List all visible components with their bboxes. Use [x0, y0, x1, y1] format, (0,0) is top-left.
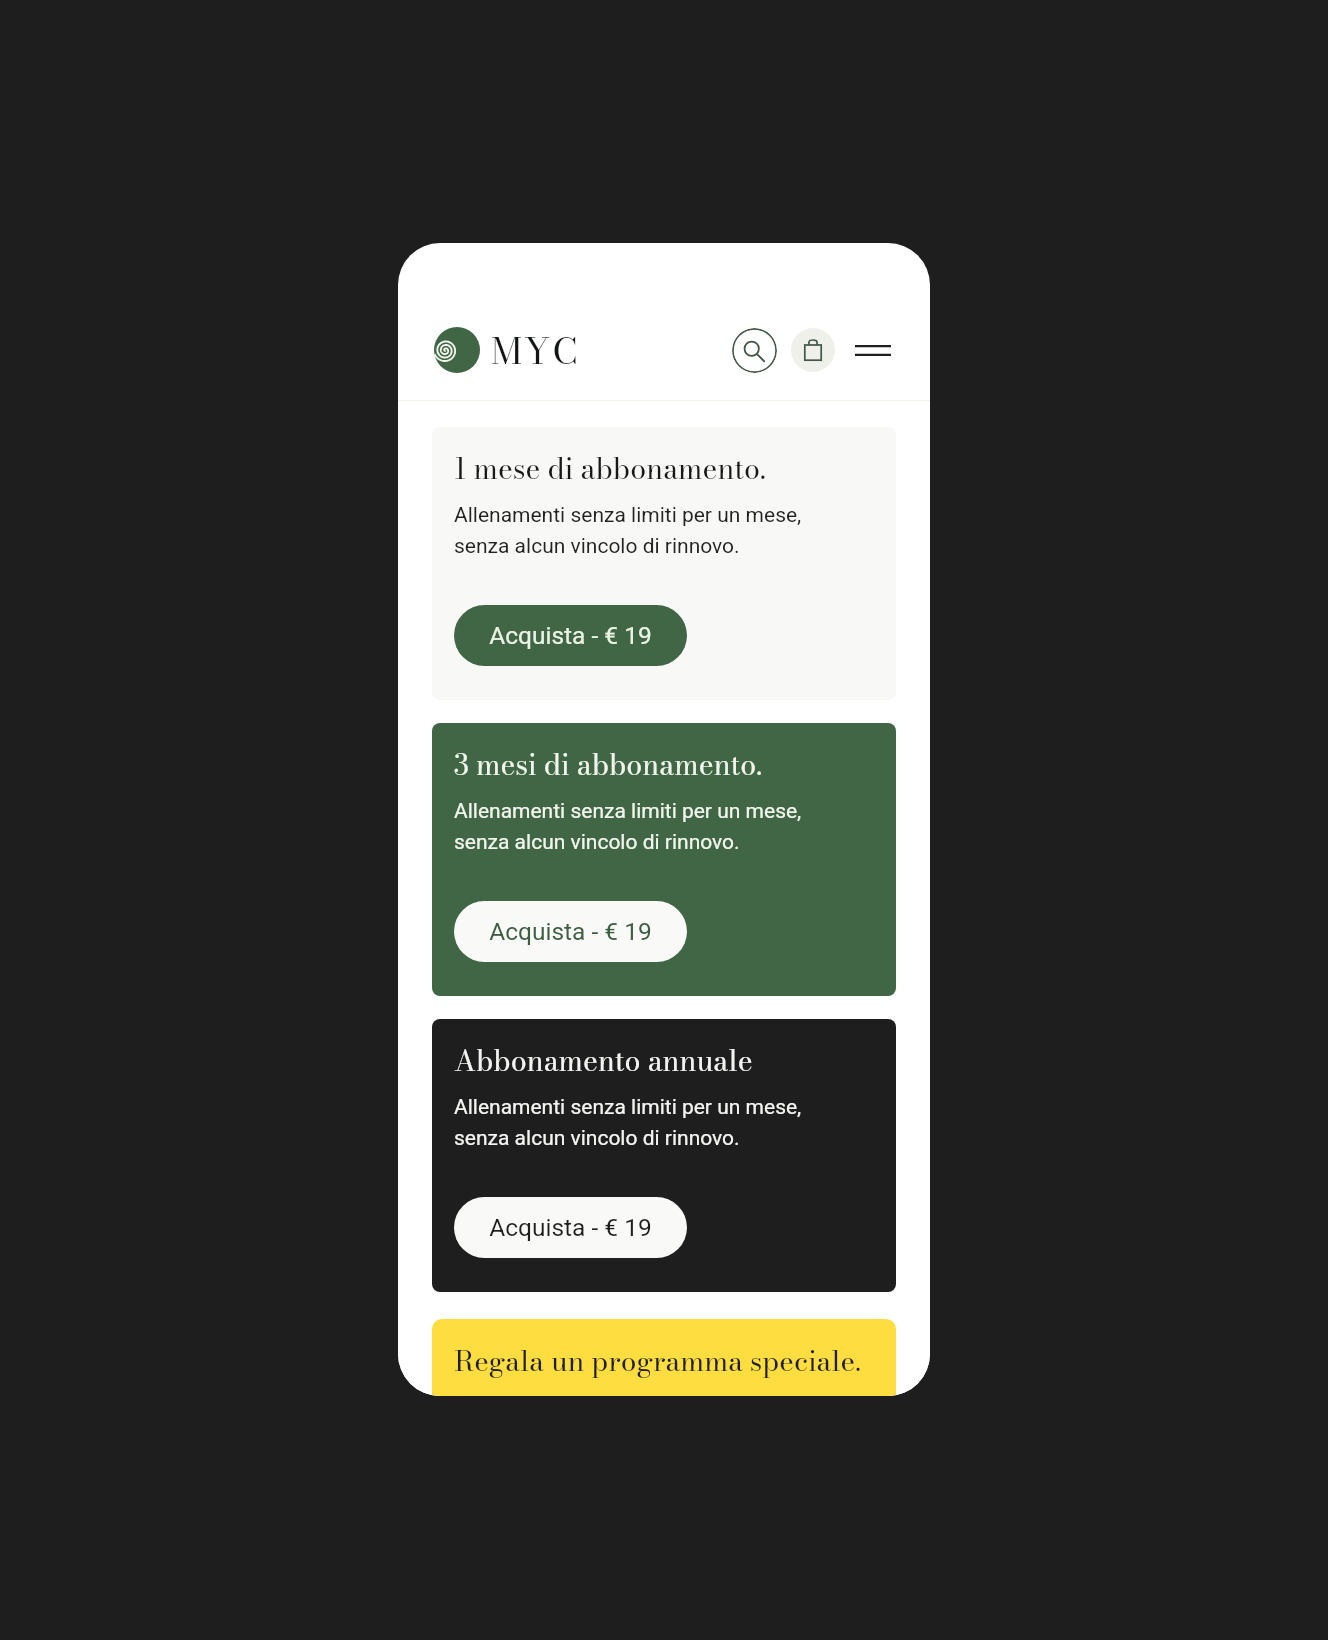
staticText: Acquista - € 19: [489, 1213, 652, 1242]
staticText: MYC: [491, 324, 581, 378]
button[interactable]: Shopping bag: [791, 328, 835, 372]
other: MYC logo: [434, 327, 480, 373]
button[interactable]: Abbonamento annuale: [432, 1019, 896, 1292]
staticText: 3 mesi di abbonamento.: [454, 743, 762, 786]
staticText: 1 mese di abbonamento.: [454, 447, 766, 490]
staticText: Acquista - € 19: [489, 917, 652, 946]
button[interactable]: Menu: [855, 330, 891, 370]
staticText: Allenamenti senza limiti per un mese, se…: [454, 503, 802, 558]
button[interactable]: Acquista - € 19: [454, 605, 687, 666]
button[interactable]: 1 mese di abbonamento.: [432, 427, 896, 700]
staticText: Acquista - € 19: [489, 621, 652, 650]
staticText: Allenamenti senza limiti per un mese, se…: [454, 799, 802, 854]
button[interactable]: Regala un programma speciale.: [432, 1319, 896, 1396]
staticText: Regala un programma speciale.: [454, 1339, 861, 1382]
staticText: Allenamenti senza limiti per un mese, se…: [454, 1095, 802, 1150]
staticText: Abbonamento annuale: [454, 1039, 753, 1082]
button[interactable]: Search: [732, 328, 777, 373]
button[interactable]: 3 mesi di abbonamento.: [432, 723, 896, 996]
button[interactable]: Acquista - € 19: [454, 901, 687, 962]
button[interactable]: Acquista - € 19: [454, 1197, 687, 1258]
